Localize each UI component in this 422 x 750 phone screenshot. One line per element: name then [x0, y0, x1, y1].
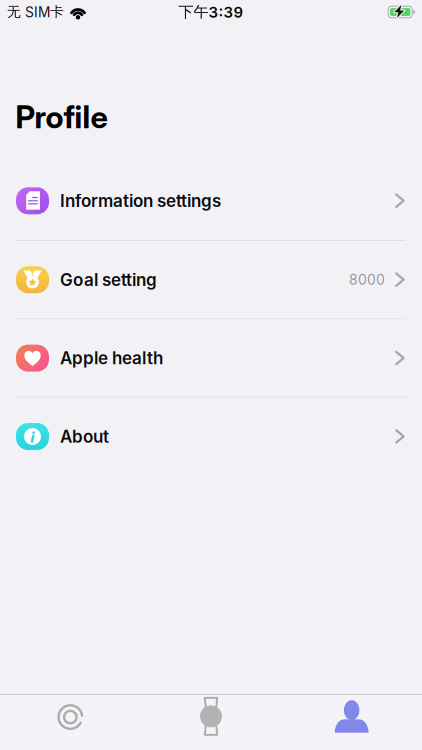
staticText: 下午3:39	[178, 3, 243, 21]
staticText: Profile	[15, 98, 107, 136]
button[interactable]: Goal setting	[0, 241, 422, 318]
staticText: Goal setting	[60, 269, 157, 290]
button[interactable]: About	[0, 398, 422, 475]
staticText: Apple health	[60, 348, 163, 368]
staticText: 无 SIM卡	[7, 3, 64, 21]
button[interactable]: Activity	[0, 695, 141, 750]
button[interactable]: Watch	[141, 695, 281, 750]
button[interactable]: Apple health	[0, 319, 422, 397]
button[interactable]: Profile	[281, 695, 422, 750]
button[interactable]: Information settings	[0, 162, 422, 240]
staticText: 8000	[349, 271, 385, 288]
staticText: About	[60, 426, 109, 447]
staticText: Information settings	[60, 190, 221, 211]
